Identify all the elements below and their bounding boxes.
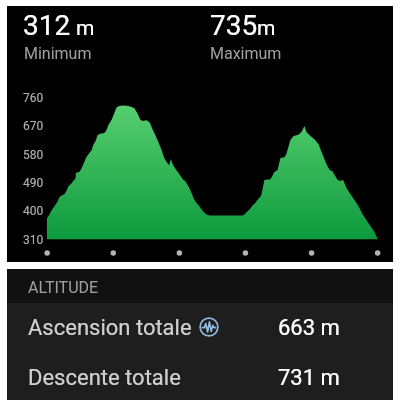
button[interactable]: Descente totale [7, 353, 393, 400]
staticText: 580 [23, 148, 44, 162]
staticText: Minimum [24, 44, 92, 63]
staticText: 670 [23, 119, 44, 133]
staticText: Ascension totale [28, 315, 192, 341]
staticText: 735 [210, 9, 258, 42]
staticText: 310 [23, 233, 44, 247]
staticText: 760 [23, 91, 44, 105]
staticText: 400 [23, 204, 44, 218]
staticText: m [257, 16, 276, 41]
staticText: Descente totale [28, 365, 181, 391]
staticText: Maximum [210, 44, 282, 63]
staticText: 663 m [278, 315, 340, 341]
button[interactable]: Ascension totale [7, 303, 393, 353]
other: Activity detail [199, 317, 219, 337]
staticText: m [76, 16, 95, 41]
staticText: 312 [23, 9, 71, 42]
staticText: 490 [23, 176, 44, 190]
staticText: ALTITUDE [28, 278, 99, 297]
staticText: 731 m [278, 365, 340, 391]
